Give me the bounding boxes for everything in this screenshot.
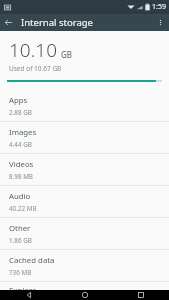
- staticText: Internal storage: [21, 16, 93, 29]
- button[interactable]: Home: [57, 290, 113, 300]
- button[interactable]: Back: [0, 290, 57, 300]
- button[interactable]: Cached data: [0, 250, 169, 281]
- staticText: Used of 10.67 GB: [9, 64, 62, 73]
- staticText: GB: [61, 49, 73, 60]
- staticText: 40.22 MB: [9, 204, 37, 213]
- button[interactable]: Images: [0, 122, 169, 153]
- staticText: 4.44 GB: [9, 140, 32, 149]
- staticText: Audio: [9, 191, 31, 202]
- staticText: Cached data: [9, 255, 55, 266]
- button[interactable]: Audio: [0, 186, 169, 217]
- staticText: 736 MB: [9, 268, 32, 277]
- staticText: Other: [9, 223, 31, 234]
- staticText: 8.98 MB: [9, 172, 33, 181]
- staticText: 2.88 GB: [9, 108, 32, 117]
- button[interactable]: Explore: [0, 282, 169, 290]
- staticText: 10.10: [9, 37, 58, 63]
- button[interactable]: Recent apps: [113, 290, 169, 300]
- button[interactable]: Apps: [0, 90, 169, 121]
- button[interactable]: More options: [152, 14, 169, 31]
- button[interactable]: Back: [0, 14, 17, 31]
- staticText: Videos: [9, 159, 34, 170]
- staticText: 1.86 GB: [9, 236, 32, 245]
- button[interactable]: Videos: [0, 154, 169, 185]
- staticText: Apps: [9, 95, 28, 106]
- staticText: Explore: [9, 285, 37, 290]
- staticText: Images: [9, 127, 37, 138]
- staticText: 1:59: [152, 2, 166, 12]
- button[interactable]: Other: [0, 218, 169, 249]
